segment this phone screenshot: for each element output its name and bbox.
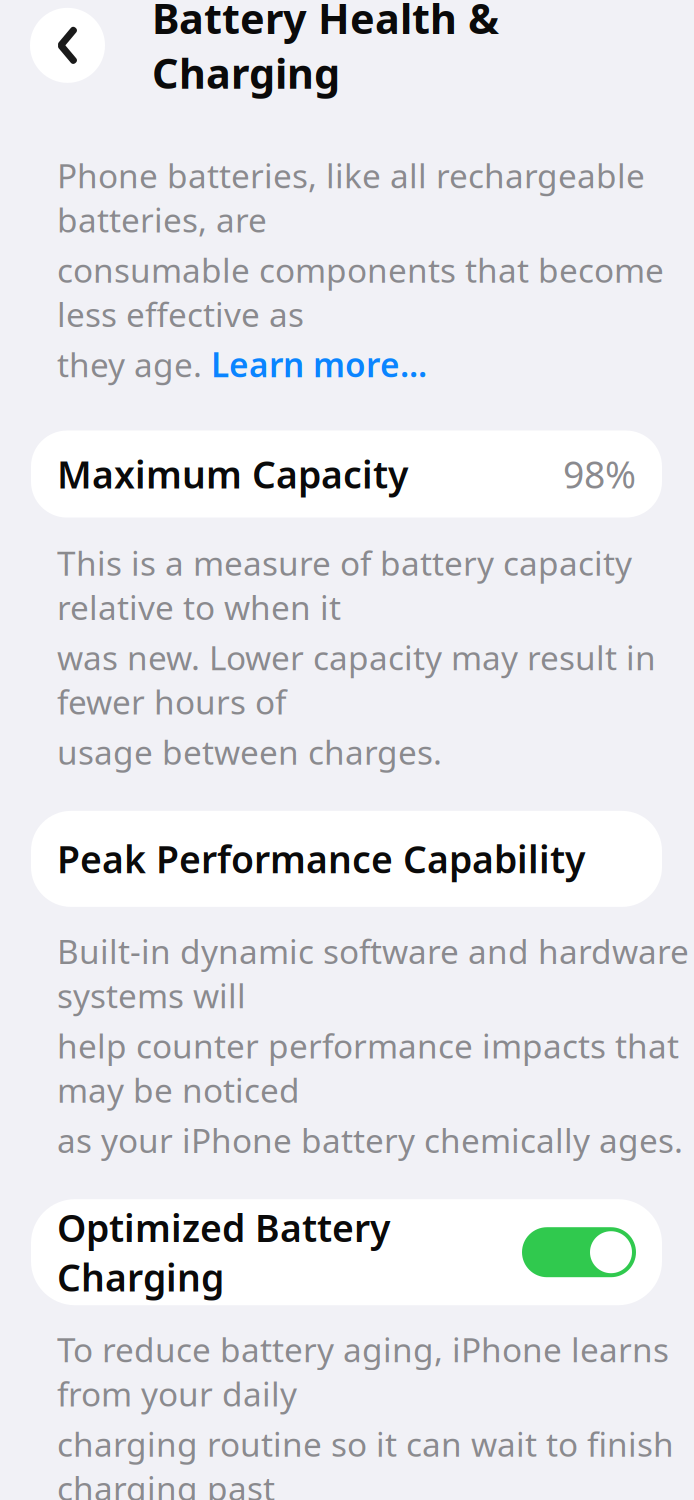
staticText: To reduce battery aging, iPhone learns f…: [57, 1327, 669, 1416]
staticText: usage between charges.: [57, 730, 442, 774]
staticText: as your iPhone battery chemically ages.: [57, 1118, 683, 1162]
button[interactable]: Optimized Battery Charging: [31, 1199, 662, 1305]
staticText: Phone batteries, like all rechargeable b…: [57, 153, 645, 242]
staticText: Battery Health & Charging: [152, 0, 499, 100]
staticText: Built-in dynamic software and hardware s…: [57, 929, 689, 1017]
staticText: consumable components that become less e…: [57, 248, 664, 336]
staticText: 98%: [563, 449, 636, 499]
button[interactable]: Peak Performance Capability: [31, 811, 662, 907]
staticText: was new. Lower capacity may result in fe…: [57, 635, 656, 724]
staticText: Learn more...: [211, 342, 427, 387]
staticText: This is a measure of battery capacity re…: [57, 541, 632, 629]
staticText: help counter performance impacts that ma…: [57, 1023, 679, 1112]
staticText: they age.: [57, 342, 211, 387]
staticText: Maximum Capacity: [57, 449, 408, 499]
button[interactable]: Learn more...: [211, 342, 427, 387]
staticText: Optimized Battery Charging: [57, 1203, 390, 1302]
button[interactable]: Back: [30, 8, 105, 83]
staticText: charging routine so it can wait to finis…: [57, 1422, 674, 1500]
staticText: Peak Performance Capability: [57, 834, 585, 884]
